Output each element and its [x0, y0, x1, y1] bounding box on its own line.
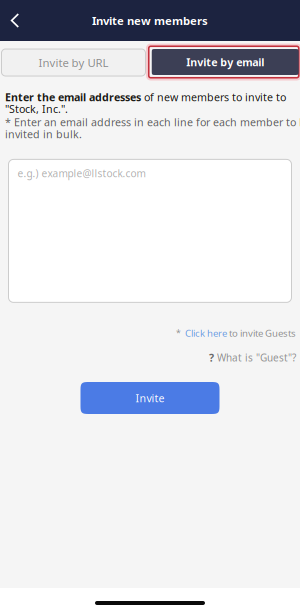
staticText: e.g.) example@llstock.com — [17, 166, 145, 180]
button[interactable]: Click here — [181, 326, 227, 339]
staticText: Click here — [181, 326, 227, 339]
staticText: Enter the email addresses of new members… — [5, 90, 286, 116]
button[interactable]: Invite — [80, 382, 219, 414]
staticText: Invite new members — [92, 13, 208, 28]
staticText: Invite by URL — [38, 55, 108, 70]
staticText: What is "Guest"? — [217, 351, 296, 364]
staticText: * Enter an email address in each line fo… — [5, 115, 300, 141]
button[interactable]: ? — [209, 350, 296, 365]
button[interactable]: Back — [0, 0, 30, 41]
staticText: * — [176, 327, 181, 339]
staticText: Invite by email — [186, 55, 264, 69]
staticText: Invite — [135, 391, 164, 405]
button[interactable]: Invite by URL — [1, 49, 145, 76]
staticText: to invite Guests — [227, 326, 296, 339]
staticText: ? — [209, 350, 214, 365]
